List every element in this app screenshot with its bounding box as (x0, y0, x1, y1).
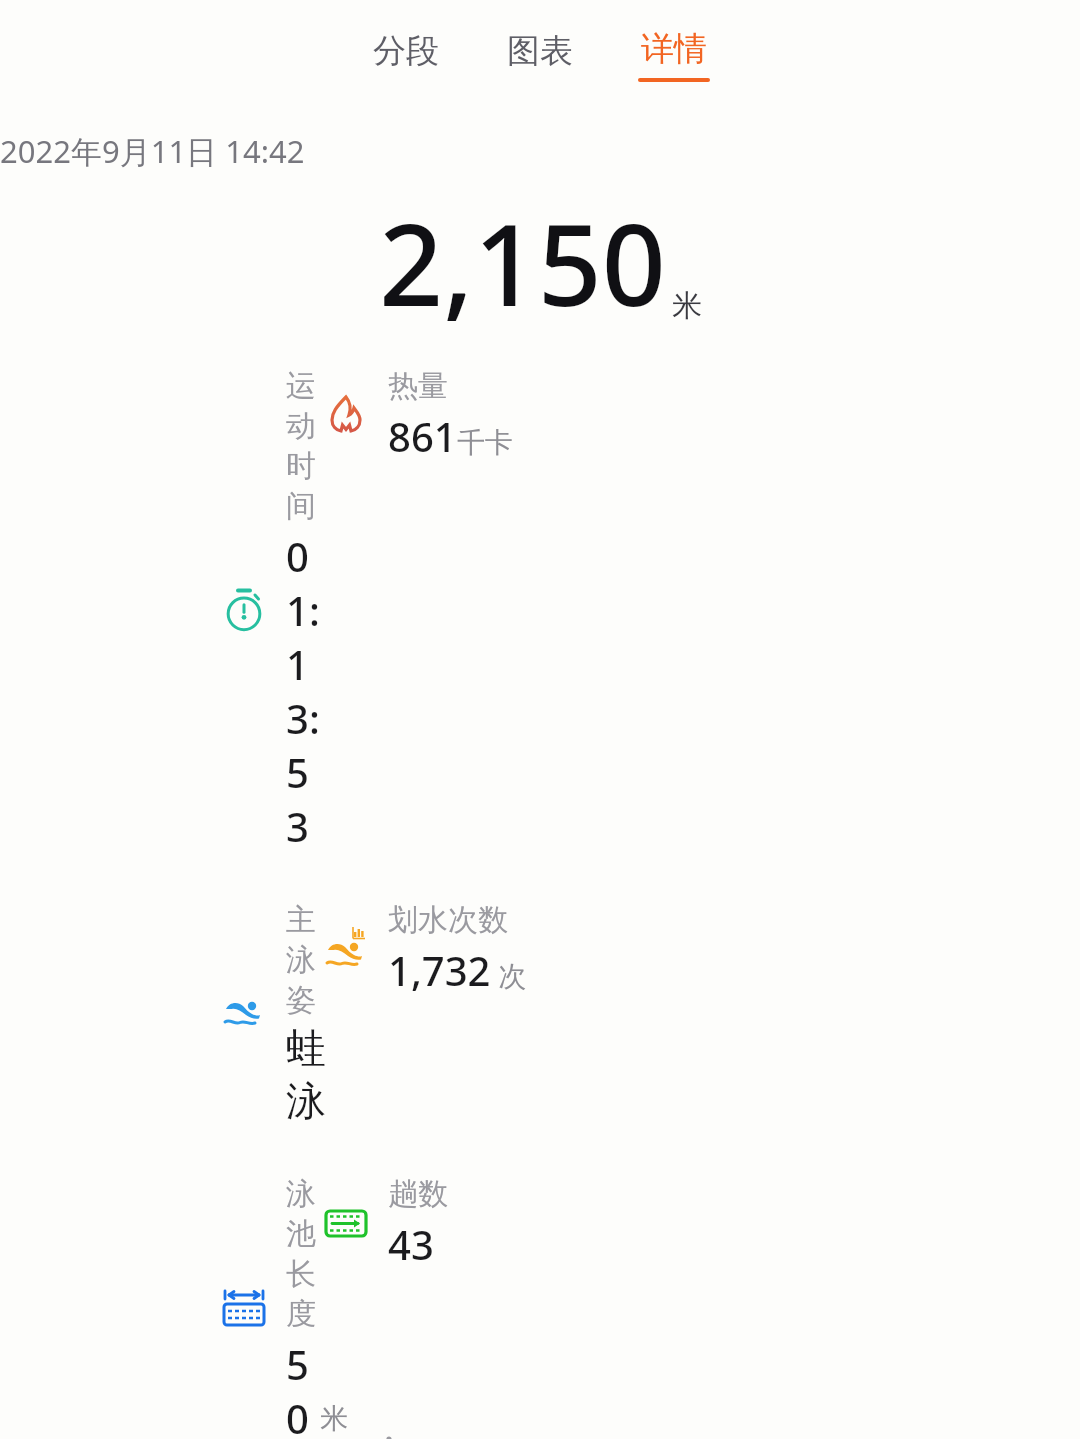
button[interactable]: 详情 (632, 24, 716, 86)
staticText: 主泳姿 (286, 901, 320, 1019)
staticText: 1,732 (388, 943, 491, 997)
staticText: 运动时间 (286, 367, 320, 525)
staticText: 热量 (388, 367, 448, 405)
button[interactable]: 主泳姿 (218, 901, 320, 1127)
staticText: 次 (491, 956, 527, 994)
staticText: 861 (388, 409, 457, 463)
staticText: 2,150 (379, 186, 666, 339)
staticText: 2022年9月11日 14:42 (0, 130, 1080, 172)
button[interactable]: 划水次数 (320, 901, 527, 997)
button[interactable]: 泳池长度 (218, 1175, 320, 1439)
staticText: 50 (286, 1337, 320, 1439)
staticText: 43 (388, 1217, 434, 1271)
staticText: 米 (672, 287, 702, 325)
staticText: 详情 (641, 28, 707, 70)
button[interactable]: 分段 (364, 26, 448, 84)
staticText: 图表 (507, 30, 573, 72)
staticText: 划水次数 (388, 901, 508, 939)
staticText: 泳池长度 (286, 1175, 320, 1333)
staticText: 千卡 (457, 425, 513, 460)
button[interactable]: 图表 (498, 26, 582, 84)
staticText: 趟数 (388, 1175, 448, 1213)
staticText: 分段 (373, 30, 439, 72)
button[interactable]: 趟数 (320, 1175, 448, 1271)
button[interactable]: 热量 (320, 367, 513, 463)
staticText: 蛙泳 (286, 1023, 320, 1127)
staticText: 01:13:53 (286, 529, 320, 853)
button[interactable]: 运动时间 (218, 367, 320, 853)
